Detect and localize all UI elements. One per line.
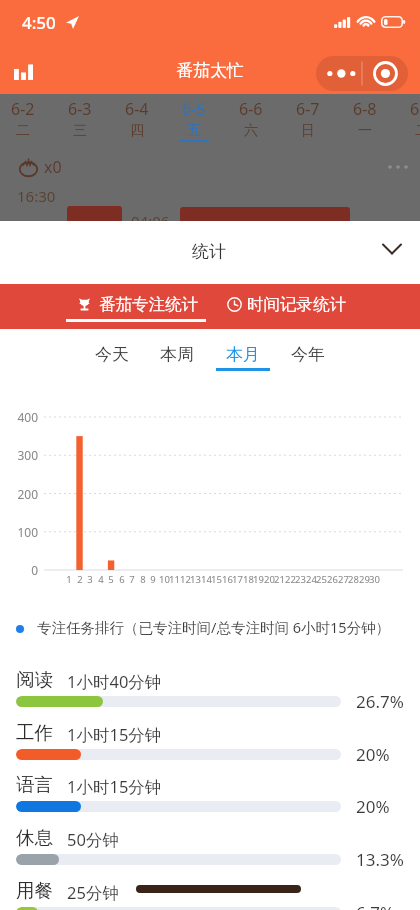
button[interactable]: Menu and close (316, 56, 408, 91)
staticText: 1小时15分钟 (67, 723, 162, 746)
button[interactable]: 今天 (84, 344, 140, 371)
staticText: 14 (201, 573, 212, 586)
staticText: 50分钟 (67, 828, 119, 851)
staticText: 16 (222, 573, 233, 586)
staticText: 20% (356, 795, 390, 818)
staticText: 阅读 (16, 668, 53, 691)
staticText: 24 (306, 573, 317, 586)
staticText: 6-2 (11, 98, 35, 120)
staticText: 工作 (16, 721, 53, 744)
staticText: 21 (274, 573, 285, 586)
staticText: 17 (232, 573, 243, 586)
button[interactable]: 6-8 (338, 98, 392, 140)
staticText: 本月 (226, 344, 260, 365)
staticText: 六 (244, 122, 258, 140)
staticText: 本周 (160, 344, 194, 365)
staticText: 5 (108, 573, 114, 586)
staticText: 番茄专注统计 (99, 294, 198, 315)
staticText: 26 (327, 573, 338, 586)
button[interactable]: 6-9 (395, 98, 420, 140)
staticText: 7 (129, 573, 135, 586)
staticText: 4:50 (22, 11, 56, 34)
staticText: 15 (211, 573, 222, 586)
button[interactable]: 时间记录统计 (220, 284, 350, 329)
staticText: 6-6 (239, 98, 263, 120)
staticText: 26.7% (356, 690, 404, 713)
staticText: 今年 (291, 344, 325, 365)
staticText: 6-3 (68, 98, 92, 120)
staticText: 今天 (95, 344, 129, 365)
staticText: 11 (169, 573, 180, 586)
staticText: 一 (358, 122, 372, 140)
staticText: 0 (31, 562, 38, 578)
staticText: 27 (338, 573, 349, 586)
staticText: 休息 (16, 826, 53, 849)
staticText: 30 (369, 573, 380, 586)
staticText: 13 (190, 573, 201, 586)
staticText: 10 (159, 573, 170, 586)
staticText: 12 (180, 573, 191, 586)
staticText: 6-5 (182, 98, 206, 120)
staticText: 200 (17, 486, 38, 502)
staticText: 统计 (192, 241, 226, 262)
staticText: 6-8 (353, 98, 377, 120)
staticText: 28 (348, 573, 359, 586)
button[interactable]: 6-6 (224, 98, 278, 140)
button[interactable]: 番茄专注统计 (62, 284, 210, 329)
staticText: 22 (285, 573, 296, 586)
button[interactable]: 本月 (215, 344, 271, 371)
staticText: 25分钟 (67, 881, 119, 904)
staticText: 300 (17, 447, 38, 463)
button[interactable]: 6-3 (53, 98, 107, 140)
staticText: 9 (150, 573, 156, 586)
staticText: 用餐 (16, 879, 53, 902)
staticText: 29 (359, 573, 370, 586)
staticText: 2 (77, 573, 83, 586)
staticText: 04:06 (131, 211, 170, 231)
staticText: 1小时15分钟 (67, 775, 162, 798)
button[interactable]: 用餐 (0, 879, 420, 910)
button[interactable]: 6-2 (0, 98, 50, 140)
button[interactable]: 休息 (0, 826, 420, 876)
staticText: 23 (295, 573, 306, 586)
staticText: 四 (130, 122, 144, 140)
staticText: 番茄太忙 (176, 60, 244, 81)
staticText: x0 (44, 156, 62, 178)
staticText: 日 (301, 122, 315, 140)
staticText: 16:30 (17, 186, 56, 206)
button[interactable]: Collapse (374, 231, 410, 267)
button[interactable]: 本周 (149, 344, 205, 371)
staticText: 19 (253, 573, 264, 586)
staticText: 6-9 (410, 98, 420, 120)
staticText: 3 (87, 573, 93, 586)
staticText: 1 (66, 573, 72, 586)
staticText: 25 (316, 573, 327, 586)
staticText: 400 (17, 409, 38, 425)
staticText: 二 (16, 122, 30, 140)
staticText: 二 (415, 122, 420, 140)
staticText: 6-4 (125, 98, 149, 120)
button[interactable]: 阅读 (0, 668, 420, 718)
staticText: 1小时40分钟 (67, 670, 162, 693)
staticText: 20 (264, 573, 275, 586)
staticText: 20% (356, 743, 390, 766)
staticText: 6 (119, 573, 125, 586)
button[interactable]: 今年 (280, 344, 336, 371)
staticText: 6-7 (296, 98, 320, 120)
staticText: 五 (187, 122, 201, 140)
staticText: 三 (73, 122, 87, 140)
button[interactable]: 6-7 (281, 98, 335, 140)
staticText: 6.7% (356, 901, 395, 910)
staticText: 时间记录统计 (247, 294, 346, 315)
staticText: 专注任务排行（已专注时间/总专注时间 6小时15分钟） (37, 617, 391, 637)
staticText: 4 (98, 573, 104, 586)
button[interactable]: 6-5 (167, 98, 221, 142)
staticText: 100 (17, 524, 38, 540)
staticText: 8 (140, 573, 146, 586)
button[interactable]: 语言 (0, 773, 420, 823)
button[interactable]: 工作 (0, 721, 420, 771)
staticText: 13.3% (356, 848, 404, 871)
staticText: 语言 (16, 773, 53, 796)
button[interactable]: 6-4 (110, 98, 164, 140)
staticText: 18 (243, 573, 254, 586)
